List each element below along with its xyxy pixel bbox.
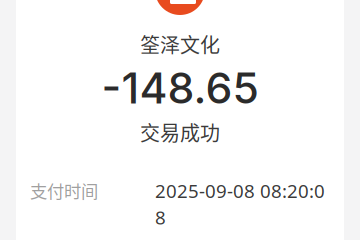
staticText: 2025-09-08 08:20:0	[155, 178, 325, 203]
staticText: 交易成功	[140, 117, 220, 146]
staticText: 筌泽文化	[140, 29, 220, 58]
button[interactable]: 支付时间	[16, 178, 344, 240]
button[interactable]: 筌泽文化	[16, 0, 344, 56]
staticText: 8	[155, 204, 166, 230]
staticText: -148.65	[101, 62, 258, 114]
staticText: 支付时间	[30, 178, 98, 203]
